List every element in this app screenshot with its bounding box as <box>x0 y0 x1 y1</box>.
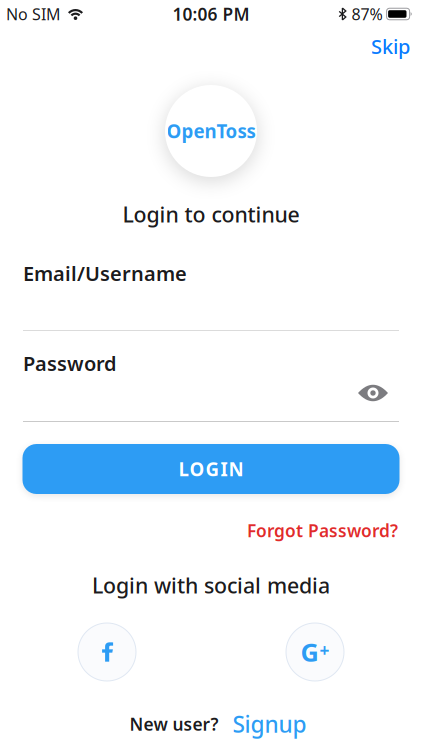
staticText: LOGIN <box>178 457 243 481</box>
staticText: Skip <box>371 33 410 60</box>
staticText: Login to continue <box>122 200 299 228</box>
staticText: 10:06 PM <box>172 2 249 25</box>
button[interactable]: LOGIN <box>22 444 399 494</box>
staticText: Login with social media <box>92 571 330 599</box>
staticText: Forgot Password? <box>247 519 398 542</box>
staticText: Email/Username <box>23 260 187 287</box>
staticText: OpenToss <box>166 119 255 143</box>
button[interactable]: Signup <box>232 709 306 739</box>
staticText: + <box>319 638 329 661</box>
staticText: No SIM <box>6 3 61 25</box>
button[interactable]: Skip <box>371 33 410 60</box>
button[interactable]: Show password <box>358 385 388 401</box>
staticText: 87% <box>352 3 383 25</box>
staticText: Password <box>23 350 117 377</box>
staticText: New user? <box>129 712 218 735</box>
button[interactable]: Forgot Password? <box>247 519 398 542</box>
staticText: G <box>300 635 318 669</box>
staticText: Signup <box>232 709 306 739</box>
button[interactable]: Login with Google <box>286 623 344 681</box>
button[interactable]: Login with Facebook <box>78 623 136 681</box>
